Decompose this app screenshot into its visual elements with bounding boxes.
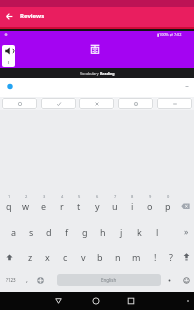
button[interactable] [79, 98, 114, 109]
staticText: g [82, 226, 88, 238]
button[interactable] [33, 273, 47, 287]
staticText: n [115, 251, 121, 263]
button[interactable]: s [22, 225, 40, 239]
staticText: ? [169, 251, 173, 263]
button[interactable] [2, 250, 17, 264]
staticText: r [60, 200, 64, 212]
button[interactable]: , [21, 274, 33, 286]
button[interactable]: ! [146, 250, 164, 264]
button[interactable]: z [21, 250, 39, 264]
button[interactable]: m [127, 250, 145, 264]
button[interactable] [41, 98, 76, 109]
staticText: 3 [43, 194, 46, 199]
button[interactable]: e [35, 199, 53, 213]
staticText: j [120, 226, 123, 238]
staticText: 2 [25, 194, 28, 199]
staticText: u [112, 200, 118, 212]
button[interactable]: f [58, 225, 76, 239]
staticText: d [46, 226, 52, 238]
staticText: ?123 [6, 277, 16, 283]
button[interactable] [121, 292, 141, 310]
button[interactable] [2, 45, 15, 67]
staticText: 9 [149, 194, 152, 199]
staticText: 1 [8, 194, 11, 199]
button[interactable]: v [74, 250, 92, 264]
staticText: p [165, 200, 171, 212]
staticText: h [100, 226, 106, 238]
staticText: i [131, 200, 134, 212]
button[interactable] [178, 199, 193, 213]
button[interactable] [118, 98, 153, 109]
staticText: l [156, 226, 159, 238]
staticText: 8 [131, 194, 134, 199]
button[interactable]: g [76, 225, 94, 239]
button[interactable]: r [53, 199, 71, 213]
button[interactable] [2, 98, 37, 109]
button[interactable]: w [17, 199, 35, 213]
staticText: z [28, 251, 33, 263]
staticText: o [147, 200, 153, 212]
button[interactable]: q [0, 199, 18, 213]
button[interactable] [48, 292, 68, 310]
button[interactable]: x [38, 250, 56, 264]
staticText: m [132, 251, 141, 263]
button[interactable]: » [177, 225, 194, 239]
button[interactable] [163, 274, 175, 286]
staticText: c [63, 251, 68, 263]
button[interactable] [86, 292, 106, 310]
staticText: English [101, 277, 117, 283]
staticText: f [65, 226, 69, 238]
button[interactable]: ?123 [1, 273, 20, 287]
staticText: e [41, 200, 47, 212]
staticText: a [11, 226, 17, 238]
staticText: 7 [114, 194, 117, 199]
button[interactable]: b [91, 250, 109, 264]
staticText: ! [154, 251, 157, 263]
button[interactable]: t [70, 199, 88, 213]
button[interactable]: d [40, 225, 58, 239]
staticText: q [6, 200, 12, 212]
staticText: s [29, 226, 34, 238]
button[interactable]: a [5, 225, 23, 239]
staticText: 6 [96, 194, 99, 199]
staticText: Vocabulary [80, 71, 100, 76]
staticText: Reviews [20, 12, 45, 20]
button[interactable]: o [141, 199, 159, 213]
staticText: Reading [100, 71, 115, 76]
staticText: , [26, 275, 28, 285]
button[interactable] [179, 273, 194, 287]
button[interactable]: p [159, 199, 177, 213]
button[interactable] [179, 250, 194, 264]
button[interactable]: English [57, 274, 161, 286]
button[interactable]: h [94, 225, 112, 239]
button[interactable] [2, 8, 16, 24]
staticText: t [77, 200, 81, 212]
staticText: v [81, 251, 86, 263]
button[interactable]: ? [162, 250, 180, 264]
button[interactable]: l [148, 225, 166, 239]
staticText: w [22, 200, 30, 212]
staticText: k [137, 226, 142, 238]
staticText: ▮100% ⇄ 7:02 [157, 32, 182, 37]
button[interactable]: u [106, 199, 124, 213]
button[interactable]: k [130, 225, 148, 239]
button[interactable]: y [88, 199, 106, 213]
staticText: 0 [167, 194, 170, 199]
button[interactable]: j [112, 225, 130, 239]
button[interactable]: i [123, 199, 141, 213]
button[interactable]: n [109, 250, 127, 264]
button[interactable]: c [56, 250, 74, 264]
button[interactable] [157, 98, 192, 109]
staticText: y [95, 200, 100, 212]
staticText: b [97, 251, 103, 263]
staticText: 5 [78, 194, 81, 199]
staticText: » [184, 226, 189, 238]
staticText: x [45, 251, 50, 263]
staticText: 4 [61, 194, 64, 199]
